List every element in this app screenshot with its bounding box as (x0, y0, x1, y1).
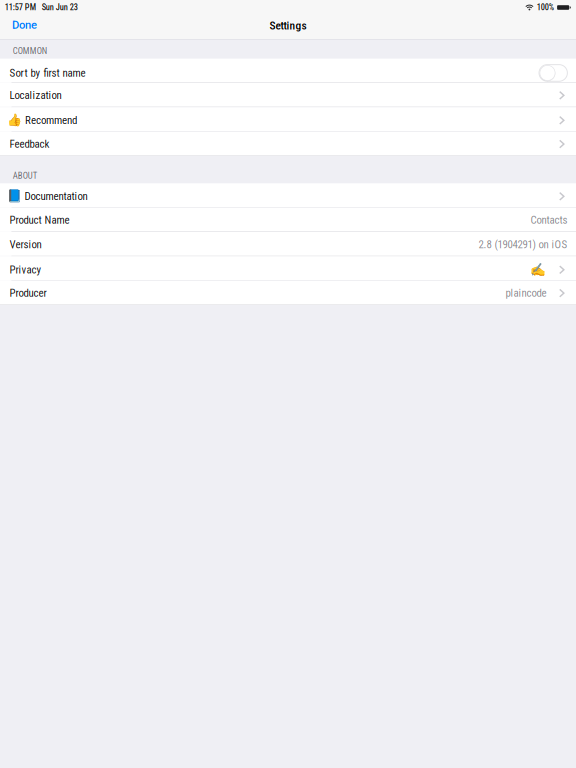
button[interactable]: Producer (0, 281, 576, 305)
staticText: Privacy (10, 263, 42, 276)
button[interactable]: Feedback (0, 132, 576, 156)
button[interactable]: Product Name (0, 208, 576, 232)
staticText: Settings (269, 19, 306, 32)
staticText: Sort by first name (10, 66, 86, 79)
staticText: Contacts (530, 214, 567, 226)
button[interactable]: Version (0, 232, 576, 256)
button[interactable]: Localization (0, 83, 576, 107)
staticText: plaincode (505, 287, 546, 299)
button[interactable]: 📘 (0, 183, 576, 208)
staticText: COMMON (13, 46, 47, 56)
button[interactable]: 👍 (0, 107, 576, 132)
staticText: Localization (10, 89, 62, 102)
button[interactable]: Done (0, 15, 47, 39)
staticText: 100% (537, 3, 554, 12)
staticText: ✍️ (530, 262, 546, 277)
staticText: 2.8 (1904291) on iOS (478, 238, 567, 251)
button[interactable]: Privacy (0, 256, 576, 281)
staticText: 11:57 PM (5, 3, 36, 12)
staticText: Sun Jun 23 (42, 3, 78, 12)
staticText: ABOUT (13, 171, 38, 181)
staticText: Documentation (24, 190, 87, 203)
button[interactable]: Sort by first name (539, 65, 567, 81)
staticText: Recommend (25, 114, 77, 127)
staticText: Version (10, 238, 42, 251)
staticText: Done (12, 18, 37, 31)
staticText: Producer (10, 287, 47, 299)
staticText: 📘 (7, 189, 22, 203)
staticText: 👍 (7, 113, 22, 127)
staticText: Feedback (10, 138, 50, 150)
staticText: Product Name (10, 214, 70, 226)
